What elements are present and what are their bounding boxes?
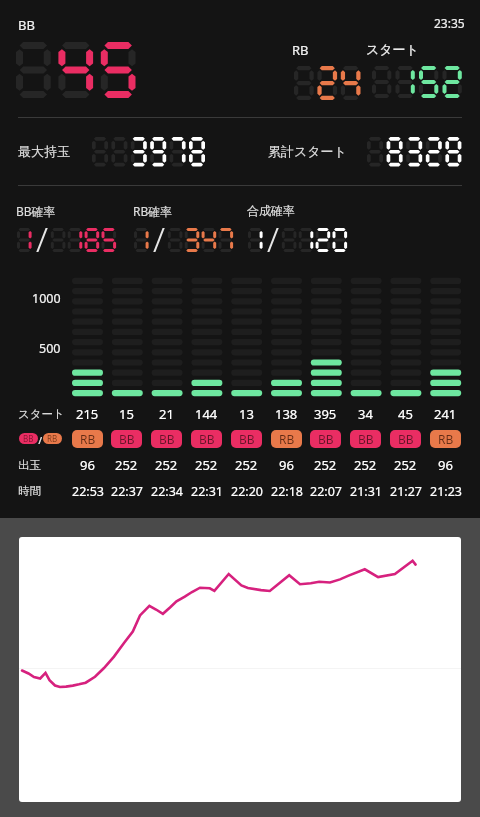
staticText: BB確率 [16,203,56,219]
staticText: 累計スタート [268,143,347,159]
staticText: BB [318,431,334,447]
staticText: RB [438,431,454,447]
staticText: 15 [119,405,134,423]
staticText: 252 [394,456,417,474]
staticText: BB [159,431,175,447]
staticText: BB [239,431,255,447]
staticText: 21:31 [350,483,382,500]
staticText: 96 [80,456,95,474]
staticText: 138 [275,405,298,423]
staticText: 252 [195,456,218,474]
staticText: 22:37 [111,483,143,500]
staticText: 21 [159,405,174,423]
staticText: RB [80,431,96,447]
staticText: 最大持玉 [18,143,70,159]
staticText: 45 [398,405,413,423]
staticText: 252 [115,456,138,474]
staticText: 13 [239,405,254,423]
staticText: 34 [358,405,373,423]
staticText: 500 [39,340,61,357]
staticText: 22:31 [191,483,223,500]
staticText: スタート [18,407,65,421]
staticText: 1000 [32,290,61,307]
staticText: 22:34 [151,483,183,500]
staticText: 395 [314,405,337,423]
staticText: 252 [235,456,258,474]
staticText: BB [358,431,374,447]
staticText: 21:23 [430,483,462,500]
staticText: 合成確率 [247,203,295,218]
staticText: 252 [354,456,377,474]
staticText: 時間 [18,484,41,498]
staticText: BB [398,431,414,447]
staticText: BB [23,433,34,444]
staticText: 出玉 [18,458,41,472]
staticText: RB [292,41,309,59]
staticText: 252 [155,456,178,474]
staticText: 215 [76,405,99,423]
staticText: 96 [279,456,294,474]
staticText: 22:07 [310,483,342,500]
staticText: 144 [195,405,218,423]
staticText: RB [279,431,295,447]
staticText: 96 [438,456,453,474]
staticText: 252 [314,456,337,474]
staticText: BB [119,431,135,447]
staticText: 22:53 [72,483,104,500]
staticText: 22:18 [271,483,303,500]
staticText: BB [18,16,35,34]
staticText: 241 [434,405,457,423]
staticText: RB [47,433,58,444]
staticText: 22:20 [231,483,263,500]
staticText: / [38,433,43,444]
staticText: スタート [366,41,419,57]
staticText: RB確率 [133,203,173,219]
staticText: BB [199,431,215,447]
staticText: 23:35 [434,15,465,31]
staticText: 21:27 [390,483,422,500]
